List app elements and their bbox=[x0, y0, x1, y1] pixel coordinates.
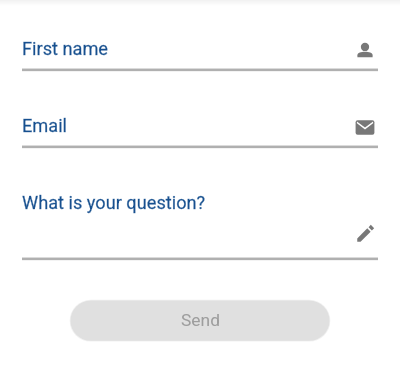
button[interactable]: Send bbox=[69, 298, 331, 343]
button[interactable]: Edit bbox=[356, 224, 375, 243]
button[interactable]: Choose contact bbox=[355, 38, 375, 58]
staticText: First name bbox=[22, 38, 109, 59]
staticText: What is your question? bbox=[22, 192, 206, 213]
staticText: First name bbox=[22, 38, 109, 59]
staticText: What is your question? bbox=[22, 192, 206, 213]
button[interactable]: What is your question? bbox=[22, 192, 206, 213]
button[interactable]: Email bbox=[22, 115, 68, 136]
staticText: Email bbox=[22, 115, 68, 136]
staticText: Email bbox=[22, 115, 68, 136]
staticText: Send bbox=[181, 310, 220, 330]
button[interactable]: Email bbox=[355, 117, 375, 137]
button[interactable]: First name bbox=[22, 38, 109, 59]
